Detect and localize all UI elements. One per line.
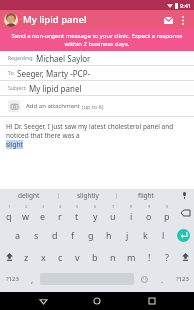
staticText: p <box>164 210 170 222</box>
staticText: t <box>75 210 79 222</box>
staticText: Add an attachment <box>26 102 80 110</box>
button[interactable]: d <box>46 224 64 246</box>
staticText: 2 <box>25 204 28 209</box>
staticText: (up to 6) <box>82 103 104 110</box>
staticText: s <box>34 229 39 241</box>
button[interactable]: v <box>69 246 86 268</box>
staticText: q <box>6 210 12 222</box>
staticText: slightly <box>77 191 99 200</box>
staticText: Michael Saylor <box>36 53 91 64</box>
button[interactable]: Back <box>31 292 55 310</box>
button[interactable]: Regarding: <box>0 51 194 66</box>
staticText: My lipid panel <box>23 13 87 26</box>
staticText: y <box>93 210 98 222</box>
staticText: k <box>143 229 148 241</box>
button[interactable]: flight <box>117 189 174 202</box>
button[interactable]: Shift <box>0 246 18 268</box>
button[interactable]: ! <box>140 246 158 268</box>
button[interactable]: More options <box>176 13 190 27</box>
button[interactable]: b <box>86 246 104 268</box>
staticText: ?123 <box>176 275 189 283</box>
staticText: ?123 <box>6 275 19 283</box>
button[interactable]: 6 <box>86 202 104 224</box>
button[interactable]: 7 <box>104 202 122 224</box>
button[interactable]: g <box>82 224 100 246</box>
button[interactable]: Recent apps <box>140 292 164 310</box>
staticText: l <box>162 229 165 241</box>
button[interactable]: slightly <box>59 189 116 202</box>
button[interactable]: ?123 <box>170 268 194 290</box>
button[interactable]: j <box>118 224 136 246</box>
button[interactable]: 2 <box>17 202 34 224</box>
button[interactable]: Add an attachment <box>8 100 186 112</box>
button[interactable]: k <box>136 224 154 246</box>
button[interactable]: x <box>35 246 52 268</box>
button[interactable]: h <box>100 224 118 246</box>
button[interactable]: n <box>104 246 122 268</box>
button[interactable]: Backspace <box>176 202 194 224</box>
button[interactable]: . <box>154 268 170 290</box>
staticText: c <box>58 251 63 263</box>
button[interactable]: Voice input <box>174 189 194 202</box>
button[interactable]: Profile photo <box>4 13 18 27</box>
staticText: Send a non-urgent message to your clinic… <box>8 32 186 48</box>
button[interactable]: Messages <box>160 12 176 28</box>
button[interactable]: Subject: <box>0 81 194 96</box>
staticText: Seeger, Marty -PCP- <box>17 68 91 79</box>
staticText: 4 <box>59 204 62 209</box>
button[interactable]: a <box>8 224 27 246</box>
button[interactable]: ? <box>158 246 176 268</box>
staticText: m <box>127 251 136 263</box>
staticText: delight <box>18 191 40 200</box>
button[interactable]: Shift <box>176 246 194 268</box>
button[interactable]: s <box>27 224 46 246</box>
button[interactable]: Enter <box>172 224 194 246</box>
staticText: a <box>15 229 21 241</box>
button[interactable]: 3 <box>34 202 51 224</box>
staticText: ! <box>148 251 151 263</box>
button[interactable]: 9 <box>140 202 158 224</box>
button[interactable]: Emoji <box>134 268 154 290</box>
staticText: Regarding: <box>8 55 34 62</box>
staticText: r <box>58 210 62 222</box>
staticText: 1 <box>8 204 11 209</box>
button[interactable]: 8 <box>122 202 140 224</box>
button[interactable]: 1 <box>0 202 17 224</box>
staticText: slight <box>6 140 23 149</box>
button[interactable]: , <box>24 268 40 290</box>
staticText: b <box>92 251 98 263</box>
button[interactable]: Home <box>85 292 109 310</box>
staticText: 7 <box>112 204 115 209</box>
staticText: f <box>71 229 75 241</box>
staticText: v <box>75 251 80 263</box>
staticText: 9:41 <box>180 2 191 9</box>
button[interactable]: 4 <box>51 202 68 224</box>
staticText: g <box>88 229 94 241</box>
button[interactable]: 5 <box>68 202 86 224</box>
button[interactable]: f <box>64 224 82 246</box>
staticText: 8 <box>130 204 133 209</box>
staticText: e <box>40 210 46 222</box>
button[interactable]: 0 <box>158 202 176 224</box>
staticText: To: <box>8 70 15 77</box>
staticText: 3 <box>42 204 45 209</box>
button[interactable]: To: <box>0 66 194 81</box>
staticText: 5 <box>76 204 79 209</box>
button[interactable]: ?123 <box>0 268 24 290</box>
button[interactable]: delight <box>0 189 58 202</box>
staticText: , <box>31 274 34 285</box>
button[interactable]: m <box>122 246 140 268</box>
staticText: z <box>24 251 29 263</box>
staticText: o <box>146 210 152 222</box>
staticText: 9 <box>148 204 151 209</box>
staticText: Hi Dr. Seeger, I just saw my latest chol… <box>6 122 188 140</box>
button[interactable]: c <box>52 246 69 268</box>
staticText: j <box>126 229 129 241</box>
staticText: i <box>130 210 133 222</box>
staticText: x <box>41 251 46 263</box>
button[interactable]: l <box>154 224 172 246</box>
staticText: My lipid panel <box>29 83 82 94</box>
staticText: 0 <box>166 204 169 209</box>
button[interactable]: z <box>18 246 35 268</box>
